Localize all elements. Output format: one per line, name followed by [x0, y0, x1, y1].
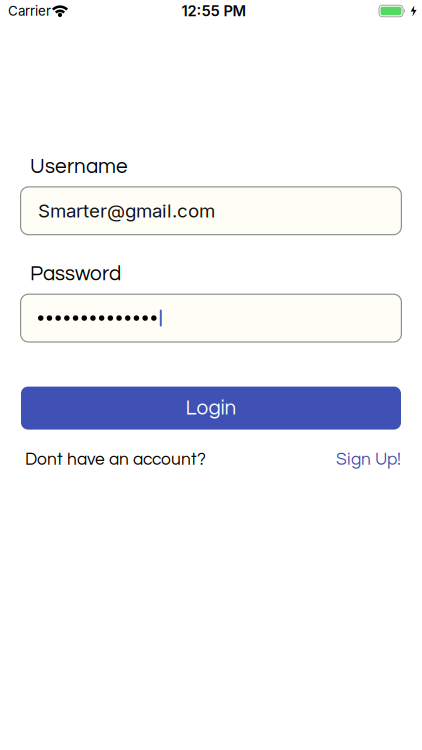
staticText: Username [30, 156, 128, 177]
button[interactable]: Password [20, 294, 402, 343]
button[interactable]: Username [20, 186, 402, 235]
staticText: Dont have an account? [25, 451, 206, 468]
staticText: Login [185, 397, 236, 419]
staticText: 12:55 PM [181, 2, 246, 20]
button[interactable]: Login [21, 387, 401, 430]
staticText: Smarter@gmail.com [38, 199, 215, 222]
staticText: Password [30, 263, 121, 285]
button[interactable]: Sign Up! [336, 451, 401, 468]
staticText: Carrier [8, 3, 51, 19]
staticText: Sign Up! [336, 451, 401, 468]
